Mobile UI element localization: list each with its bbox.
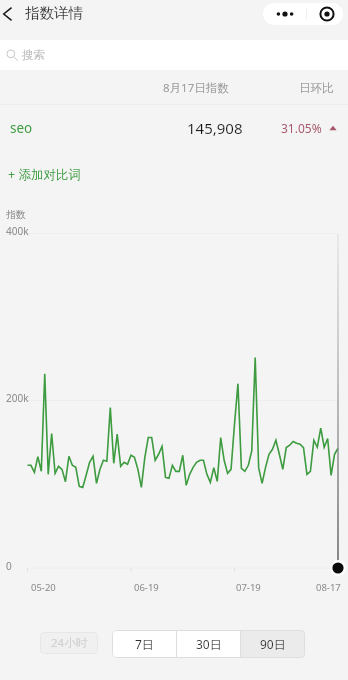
button[interactable]: Back xyxy=(0,0,15,27)
staticText: 400k xyxy=(6,224,29,238)
staticText: 30日 xyxy=(196,636,222,652)
button[interactable]: More options xyxy=(263,3,306,25)
staticText: 07-19 xyxy=(236,581,261,594)
staticText: 08-17 xyxy=(316,581,341,594)
staticText: 0 xyxy=(6,559,12,573)
staticText: 8月17日指数 xyxy=(163,80,229,96)
staticText: 指数 xyxy=(6,208,26,221)
staticText: + 添加对比词 xyxy=(8,166,81,183)
staticText: 日环比 xyxy=(299,81,334,95)
button[interactable]: + 添加对比词 xyxy=(4,158,85,190)
staticText: 145,908 xyxy=(187,118,243,138)
staticText: 指数详情 xyxy=(25,4,83,20)
button[interactable]: 90日 xyxy=(241,630,305,658)
button[interactable]: 24小时 xyxy=(40,632,98,654)
staticText: seo xyxy=(10,119,33,137)
button[interactable]: seo xyxy=(0,105,348,150)
button[interactable]: Close mini program xyxy=(307,3,343,25)
button[interactable]: 7日 xyxy=(112,630,176,658)
staticText: 7日 xyxy=(135,636,154,652)
button[interactable]: 30日 xyxy=(177,630,240,658)
staticText: 05-20 xyxy=(31,581,56,594)
staticText: 90日 xyxy=(260,636,286,652)
staticText: 搜索 xyxy=(22,48,45,62)
staticText: 24小时 xyxy=(51,635,88,651)
staticText: 200k xyxy=(6,391,29,405)
staticText: 06-19 xyxy=(134,581,159,594)
staticText: 31.05% xyxy=(281,120,322,136)
